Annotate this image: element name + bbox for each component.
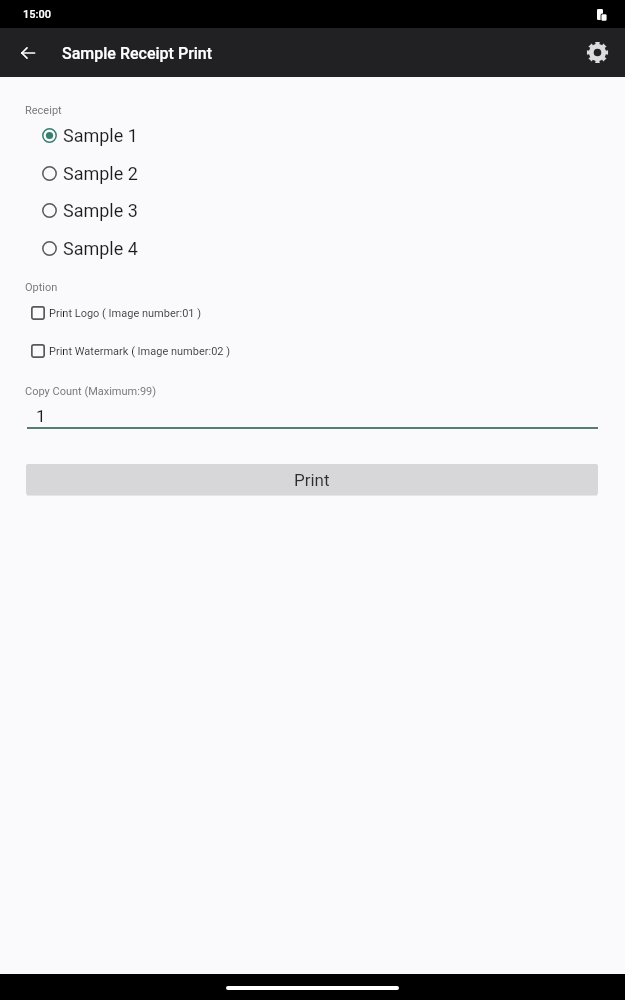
button[interactable]: Sample 4 — [0, 235, 625, 262]
staticText: Sample 3 — [63, 200, 138, 221]
staticText: 1 — [36, 406, 46, 426]
button[interactable]: Settings — [577, 33, 617, 73]
staticText: Print — [294, 470, 330, 490]
staticText: Sample 1 — [63, 125, 138, 146]
staticText: Print Logo ( Image number:01 ) — [49, 307, 202, 320]
button[interactable]: Print Watermark ( Image number:02 ) — [0, 337, 625, 365]
button[interactable]: Sample 3 — [0, 197, 625, 224]
staticText: Sample 2 — [63, 163, 138, 184]
button[interactable]: Print Logo ( Image number:01 ) — [0, 299, 625, 327]
button[interactable]: Back — [10, 35, 46, 71]
staticText: Print Watermark ( Image number:02 ) — [49, 345, 231, 358]
button[interactable]: Sample 2 — [0, 160, 625, 187]
staticText: 15:00 — [23, 8, 51, 21]
staticText: Copy Count (Maximum:99) — [25, 385, 157, 398]
staticText: Receipt — [25, 104, 62, 117]
button[interactable]: Print — [26, 464, 598, 495]
staticText: Option — [25, 281, 58, 294]
staticText: Sample Receipt Print — [62, 44, 213, 63]
button[interactable]: Sample 1 — [0, 122, 625, 149]
staticText: Sample 4 — [63, 238, 138, 259]
